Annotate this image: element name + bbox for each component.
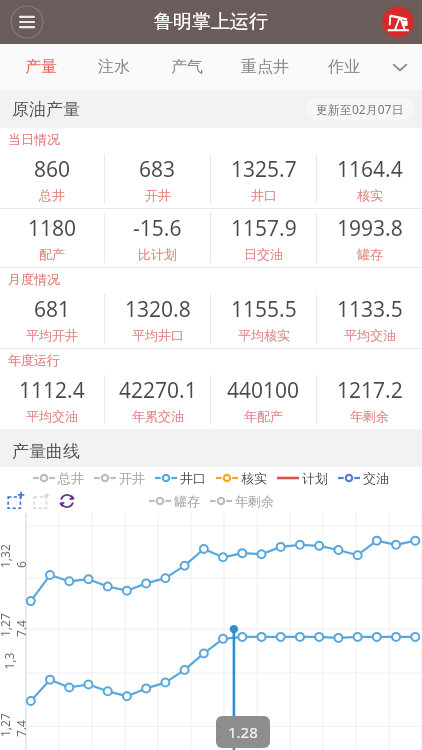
staticText: 年剩余 — [350, 408, 389, 424]
staticText: 1,277.4 — [0, 711, 29, 737]
staticText: 440100 — [227, 376, 300, 405]
staticText: 当日情况 — [8, 131, 60, 147]
button[interactable]: 核实 — [216, 470, 267, 486]
button[interactable]: 681 — [0, 290, 104, 348]
button[interactable]: 1217.2 — [317, 371, 422, 429]
staticText: 鲁明掌上运行 — [154, 10, 268, 34]
staticText: 年配产 — [244, 408, 283, 424]
button[interactable]: 年剩余 — [210, 493, 274, 509]
button[interactable]: Menu — [10, 5, 44, 39]
staticText: 原油产量 — [12, 99, 80, 120]
staticText: 日交油 — [244, 246, 283, 262]
button[interactable]: Reset zoom — [54, 489, 80, 513]
button[interactable]: 1112.4 — [0, 371, 104, 429]
staticText: 年剩余 — [235, 493, 274, 509]
staticText: 开井 — [119, 470, 145, 486]
button[interactable]: 罐存 — [149, 493, 200, 509]
staticText: 平均核实 — [238, 327, 290, 343]
staticText: 比计划 — [138, 246, 177, 262]
button[interactable]: 产量 — [4, 44, 77, 90]
staticText: 产量曲线 — [12, 441, 80, 462]
staticText: 配产 — [39, 246, 65, 262]
button[interactable]: 开井 — [94, 470, 145, 486]
staticText: 核实 — [241, 470, 267, 486]
staticText: 总井 — [58, 470, 84, 486]
staticText: 1157.9 — [231, 214, 297, 243]
staticText: 井口 — [180, 470, 206, 486]
button[interactable]: 1164.4 — [317, 150, 422, 208]
button[interactable]: 860 — [0, 150, 104, 208]
staticText: 681 — [34, 295, 71, 324]
staticText: 1133.5 — [337, 295, 403, 324]
button[interactable]: 产气 — [150, 44, 223, 90]
staticText: 1.28 — [228, 722, 258, 742]
staticText: 1,326 — [0, 542, 29, 568]
staticText: 860 — [34, 155, 71, 184]
staticText: 1320.8 — [125, 295, 191, 324]
staticText: 作业 — [328, 57, 360, 77]
button[interactable]: 1157.9 — [211, 209, 316, 267]
staticText: 罐存 — [357, 246, 383, 262]
staticText: 总井 — [39, 187, 65, 203]
button[interactable]: 683 — [105, 150, 210, 208]
staticText: 产气 — [171, 57, 203, 77]
staticText: 年度运行 — [8, 352, 60, 368]
button[interactable]: 注水 — [77, 44, 150, 90]
staticText: 罐存 — [174, 493, 200, 509]
staticText: 平均交油 — [344, 327, 396, 343]
staticText: -15.6 — [133, 214, 182, 243]
staticText: 平均交油 — [26, 408, 78, 424]
button[interactable]: 1155.5 — [211, 290, 316, 348]
staticText: 1325.7 — [231, 155, 297, 184]
staticText: 683 — [139, 155, 176, 184]
staticText: 交油 — [363, 470, 389, 486]
button[interactable]: 42270.1 — [105, 371, 210, 429]
button[interactable]: 总井 — [33, 470, 84, 486]
staticText: 注水 — [98, 57, 130, 77]
button[interactable]: 1325.7 — [211, 150, 316, 208]
staticText: 1164.4 — [337, 155, 403, 184]
staticText: 更新至02月07日 — [316, 101, 404, 117]
button[interactable]: 作业 — [307, 44, 380, 90]
staticText: 平均开井 — [26, 327, 78, 343]
button[interactable]: 1133.5 — [317, 290, 422, 348]
button[interactable]: 更新至02月07日 — [306, 98, 414, 120]
button[interactable]: More tabs — [380, 44, 420, 90]
button[interactable]: 重点井 — [223, 44, 307, 90]
staticText: 平均井口 — [132, 327, 184, 343]
button[interactable]: 1320.8 — [105, 290, 210, 348]
button[interactable]: 井口 — [155, 470, 206, 486]
staticText: 1993.8 — [337, 214, 403, 243]
button[interactable]: 计划 — [277, 470, 328, 486]
button[interactable]: -15.6 — [105, 209, 210, 267]
staticText: 井口 — [251, 187, 277, 203]
staticText: 年累交油 — [132, 408, 184, 424]
button[interactable]: 440100 — [211, 371, 316, 429]
staticText: 1155.5 — [231, 295, 297, 324]
staticText: 核实 — [357, 187, 383, 203]
staticText: 重点井 — [241, 57, 289, 77]
staticText: 1217.2 — [337, 376, 403, 405]
button[interactable]: Zoom select — [2, 489, 28, 513]
button[interactable]: Undo zoom — [28, 489, 54, 513]
staticText: 42270.1 — [119, 376, 197, 405]
staticText: 开井 — [145, 187, 171, 203]
staticText: 计划 — [302, 470, 328, 486]
staticText: 产量 — [25, 57, 57, 77]
staticText: 1112.4 — [19, 376, 85, 405]
staticText: 月度情况 — [8, 271, 60, 287]
button[interactable]: 1180 — [0, 209, 104, 267]
staticText: 1,3 — [0, 652, 16, 669]
staticText: 1,277.4 — [0, 611, 29, 637]
button[interactable]: 交油 — [338, 470, 389, 486]
button[interactable]: 1993.8 — [317, 209, 422, 267]
staticText: 1180 — [28, 214, 77, 243]
button[interactable]: App logo — [382, 6, 414, 38]
